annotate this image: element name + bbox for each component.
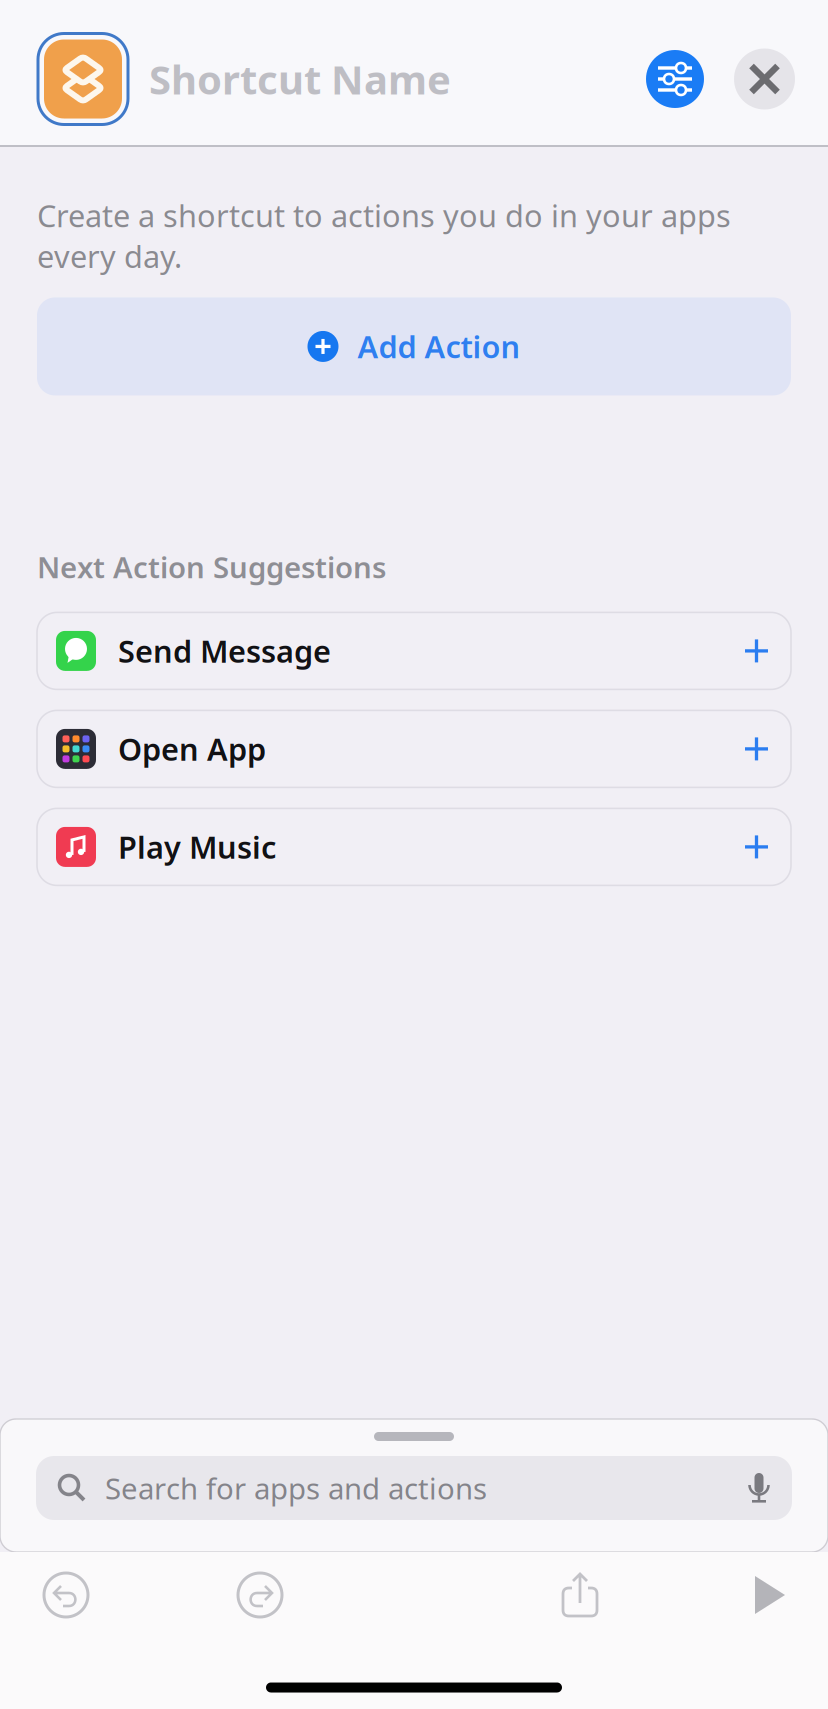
- staticText: Create a shortcut to actions you do in y…: [37, 195, 731, 276]
- button[interactable]: Open App: [37, 710, 791, 787]
- button[interactable]: Redo: [238, 1573, 282, 1617]
- button[interactable]: Shortcut icon: [37, 32, 129, 125]
- staticText: Send Message: [118, 630, 331, 671]
- button[interactable]: Shortcut details: [646, 50, 704, 108]
- staticText: Play Music: [118, 826, 276, 867]
- button[interactable]: Share: [558, 1570, 602, 1620]
- staticText: Shortcut Name: [149, 52, 451, 105]
- button[interactable]: Add Action: [37, 297, 791, 395]
- button[interactable]: Close: [734, 48, 795, 109]
- button[interactable]: Run: [751, 1574, 789, 1616]
- staticText: Open App: [118, 728, 266, 769]
- button[interactable]: Play Music: [37, 808, 791, 885]
- staticText: Next Action Suggestions: [37, 547, 386, 586]
- staticText: Add Action: [357, 326, 520, 367]
- button[interactable]: Undo: [44, 1573, 88, 1617]
- button[interactable]: Send Message: [37, 612, 791, 689]
- staticText: Search for apps and actions: [105, 1468, 487, 1507]
